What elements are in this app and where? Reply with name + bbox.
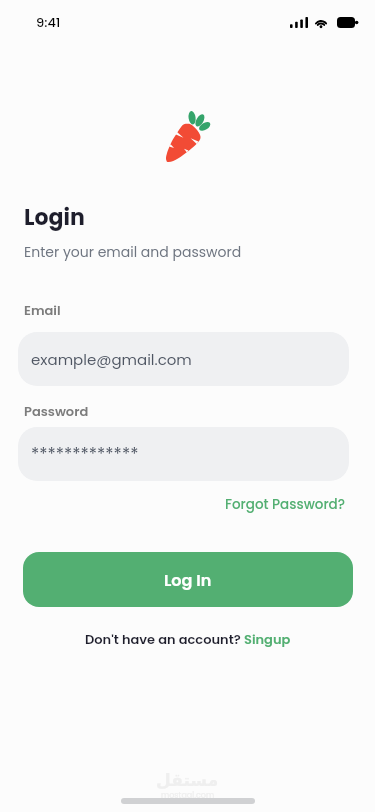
staticText: Log In (164, 569, 212, 591)
button[interactable]: Forgot Password? (223, 493, 348, 516)
staticText: Password (24, 402, 89, 420)
staticText: Login (24, 202, 85, 233)
button[interactable]: example@gmail.com (18, 332, 349, 386)
staticText: mostaql.com (161, 790, 215, 801)
button[interactable]: ************* (18, 427, 349, 481)
staticText: Email (24, 301, 61, 319)
staticText: ************* (31, 442, 139, 466)
staticText: example@gmail.com (31, 349, 192, 370)
other: Carrot logo (164, 114, 212, 169)
staticText: 9:41 (36, 13, 61, 31)
staticText: Singup (244, 630, 291, 648)
staticText: مستقل (156, 770, 219, 790)
staticText: Enter your email and password (24, 242, 242, 262)
staticText: Don't have an account? (85, 630, 244, 648)
button[interactable]: Singup (244, 630, 291, 648)
button[interactable]: Log In (23, 552, 353, 607)
staticText: Forgot Password? (225, 495, 346, 514)
